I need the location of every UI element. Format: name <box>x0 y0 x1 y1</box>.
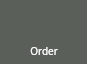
staticText: Order <box>30 44 58 58</box>
button[interactable]: Order <box>0 0 87 64</box>
